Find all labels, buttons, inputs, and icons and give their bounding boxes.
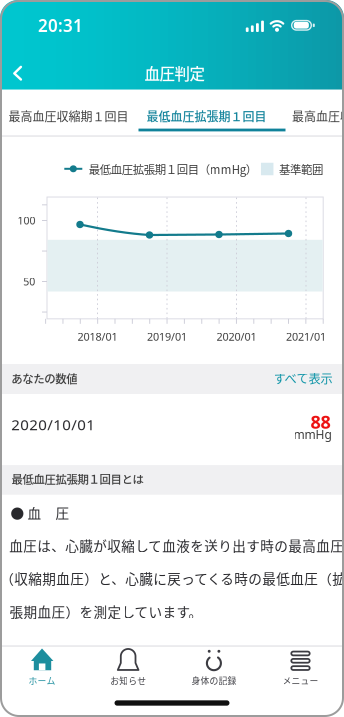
staticText: メニュー — [282, 674, 318, 687]
staticText: 20:31 — [38, 14, 83, 37]
staticText: 2018/01 — [77, 329, 117, 344]
button[interactable]: 身体の記録 — [171, 648, 257, 687]
staticText: 2020/10/01 — [11, 414, 95, 435]
button[interactable]: 最高血圧収縮期１回目 — [292, 107, 344, 125]
staticText: 最低血圧拡張期１回目 — [146, 107, 266, 125]
staticText: 基準範囲 — [279, 161, 323, 177]
staticText: 身体の記録 — [191, 674, 236, 687]
staticText: 最高血圧収縮期１回目 — [292, 107, 344, 125]
staticText: お知らせ — [110, 674, 146, 687]
staticText: 最低血圧拡張期１回目とは — [11, 470, 143, 487]
staticText: 2019/01 — [147, 329, 187, 344]
staticText: 2020/01 — [216, 329, 256, 344]
button[interactable]: 最高血圧収縮期１回目 — [0, 93, 136, 139]
button[interactable]: すべて表示 — [273, 369, 332, 387]
button[interactable]: メニュー — [257, 648, 343, 687]
button[interactable]: お知らせ — [85, 648, 171, 687]
button[interactable]: 最低血圧拡張期１回目 — [136, 93, 276, 139]
staticText: ● 血 圧 — [10, 503, 69, 522]
staticText: あなたの数値 — [11, 370, 77, 386]
staticText: ホーム — [28, 674, 55, 687]
staticText: 最高血圧収縮期１回目 — [8, 107, 128, 125]
staticText: 100 — [18, 213, 36, 228]
staticText: 血圧判定 — [144, 62, 204, 84]
button[interactable]: ホーム — [0, 648, 85, 687]
staticText: 張期血圧）を測定しています。 — [9, 601, 202, 621]
button[interactable]: Back — [4, 58, 34, 88]
staticText: 血圧は、心臓が収縮して血液を送り出す時の最高血圧 — [9, 535, 344, 555]
staticText: （収縮期血圧）と、心臓に戻ってくる時の最低血圧（拡 — [0, 568, 344, 588]
staticText: すべて表示 — [273, 369, 332, 387]
staticText: 50 — [23, 274, 35, 289]
staticText: 88 — [310, 409, 330, 434]
staticText: 最低血圧拡張期１回目（mmHg） — [89, 161, 257, 177]
staticText: mmHg — [293, 426, 331, 442]
staticText: 2021/01 — [286, 329, 326, 344]
